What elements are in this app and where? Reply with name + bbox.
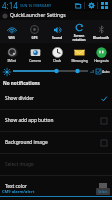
staticText: Select — [98, 189, 108, 194]
button[interactable]: Brightness slider — [13, 66, 88, 76]
button[interactable]: Auto brightness — [96, 69, 101, 74]
staticText: CM9 alarm/alert — [2, 189, 35, 194]
button[interactable]: 3Mint — [0, 43, 23, 65]
button[interactable]: Screen rotation — [68, 20, 90, 43]
button[interactable]: Select — [96, 188, 110, 195]
staticText: Wifi — [8, 36, 15, 40]
button[interactable]: Recent apps — [72, 0, 84, 11]
staticText: Hangouts — [94, 59, 109, 63]
button[interactable]: Sound — [46, 20, 68, 43]
staticText: Show divider — [5, 95, 34, 102]
button[interactable]: Text color — [0, 176, 112, 197]
button[interactable]: Show divider — [0, 88, 112, 109]
staticText: SUN 16 FEBRUARY — [20, 3, 52, 8]
button[interactable]: Camera — [23, 43, 46, 65]
button[interactable]: Select image — [0, 154, 112, 175]
button[interactable]: Background image — [0, 132, 112, 153]
staticText: Clock — [53, 59, 61, 63]
staticText: 3Mint — [7, 59, 16, 63]
button[interactable]: Bluetooth — [90, 20, 112, 43]
staticText: Camera — [29, 59, 41, 63]
staticText: GPS — [31, 36, 38, 40]
staticText: Background image — [5, 139, 48, 146]
button[interactable]: Messaging — [68, 43, 90, 65]
button[interactable]: Wifi — [0, 20, 23, 43]
button[interactable]: Clock — [46, 43, 68, 65]
staticText: Text color — [5, 183, 27, 190]
button[interactable]: Show add app button — [0, 110, 112, 131]
button[interactable]: All apps — [98, 0, 110, 11]
staticText: Sound — [52, 36, 62, 40]
button[interactable]: Brightness — [2, 67, 11, 76]
staticText: Auto — [102, 69, 110, 74]
staticText: Bluetooth — [93, 36, 109, 40]
staticText: QuickLauncher Settings — [10, 12, 66, 19]
button[interactable]: Settings — [85, 0, 97, 11]
button[interactable]: Hangouts — [90, 43, 112, 65]
button[interactable]: GPS — [23, 20, 46, 43]
staticText: Screen rotation — [72, 34, 86, 42]
staticText: +3 — [90, 69, 95, 74]
staticText: Select image — [5, 161, 34, 168]
staticText: No notifications — [3, 80, 40, 86]
staticText: Show add app button — [5, 117, 54, 124]
staticText: Messaging — [71, 59, 88, 63]
staticText: 4:14 — [2, 0, 18, 11]
